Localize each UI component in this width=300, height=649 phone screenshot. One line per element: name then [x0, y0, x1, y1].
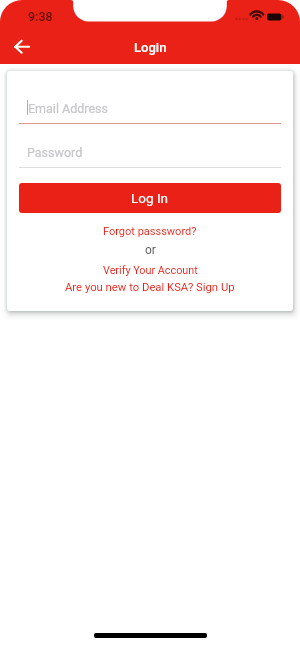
staticText: Forgot passsword? [103, 225, 197, 238]
staticText: Password [27, 145, 83, 160]
staticText: or [145, 243, 156, 257]
staticText: Are you new to Deal KSA? Sign Up [65, 281, 235, 294]
button[interactable]: Back [7, 34, 37, 60]
staticText: Log In [131, 190, 169, 206]
button[interactable]: Log In [19, 183, 281, 213]
staticText: Login [134, 40, 167, 55]
staticText: Verify Your Account [103, 264, 198, 277]
staticText: 9:38 [28, 9, 53, 24]
button[interactable]: Forgot passsword? [103, 224, 197, 239]
button[interactable]: Verify Your Account [103, 263, 198, 278]
button[interactable]: Are you new to Deal KSA? Sign Up [65, 280, 235, 295]
staticText: Email Address [28, 101, 108, 116]
